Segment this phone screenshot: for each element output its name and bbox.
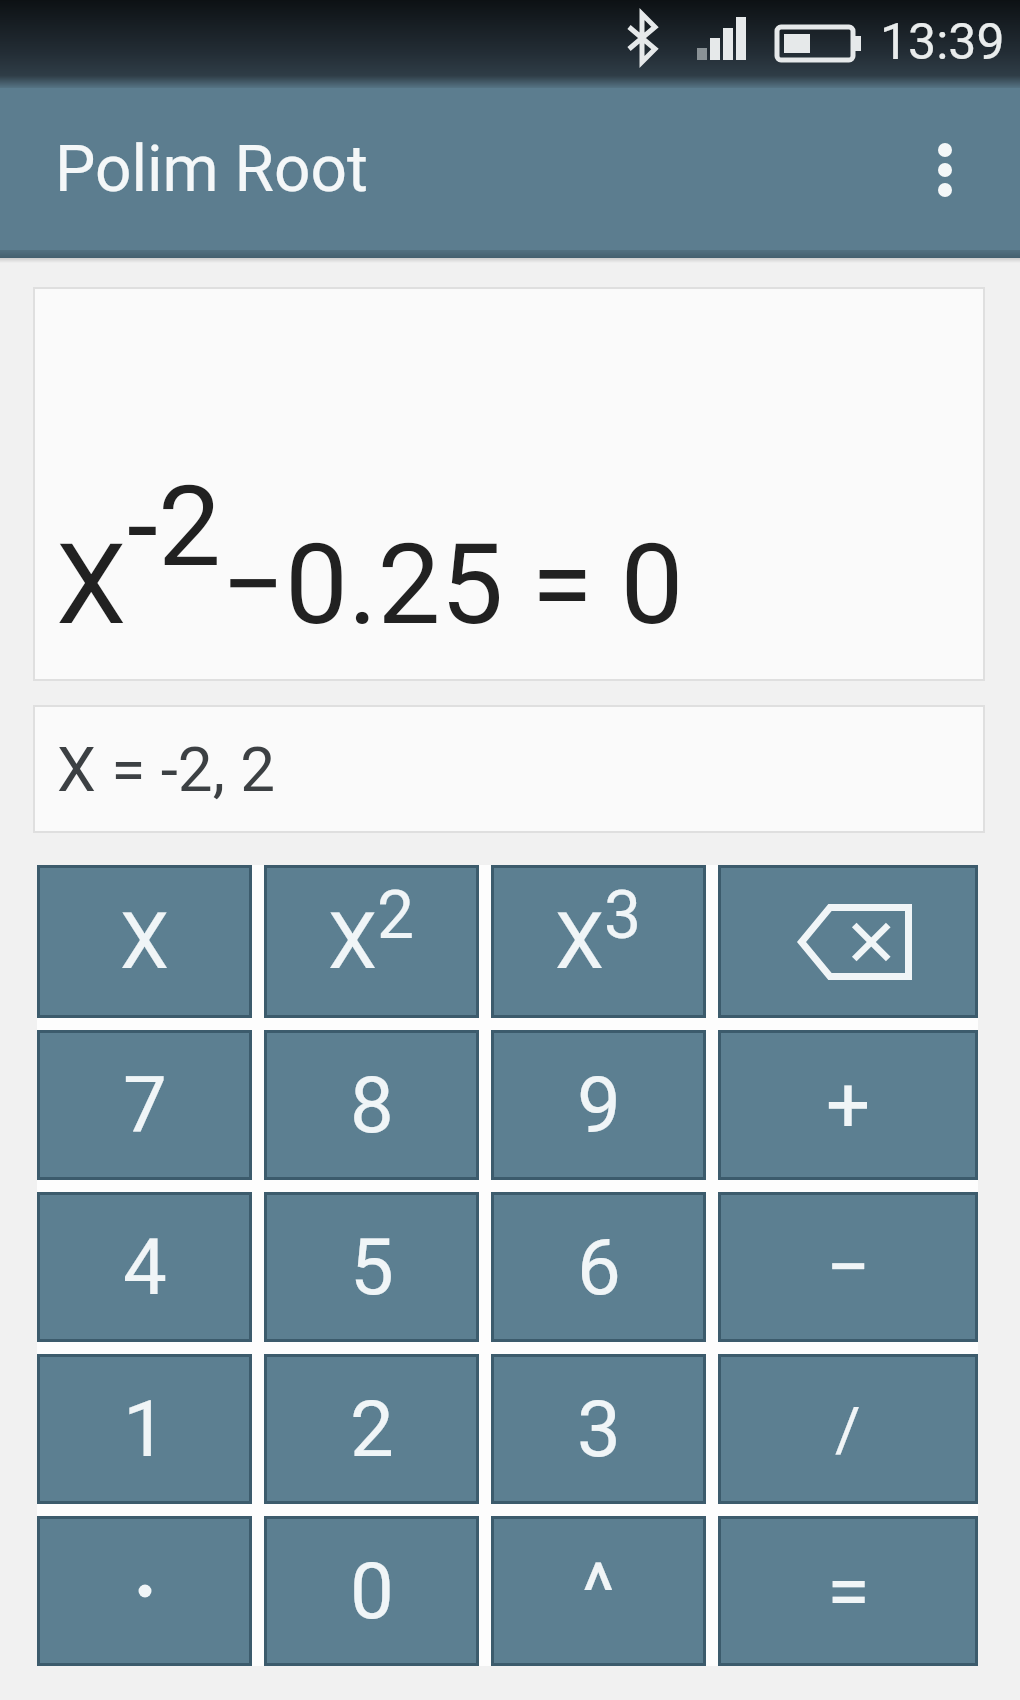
button[interactable]: 5 [264,1192,479,1342]
staticText: Polim Root [55,132,368,207]
staticText: 4 [123,1222,167,1313]
button[interactable]: 1 [37,1354,252,1504]
staticText: X = -2, 2 [57,733,276,806]
staticText: 6 [577,1222,621,1313]
button[interactable]: 6 [491,1192,706,1342]
staticText: 2 [377,877,415,954]
button[interactable]: 4 [37,1192,252,1342]
staticText: −0.25 = 0 [221,519,684,650]
staticText: -2 [127,461,221,592]
button[interactable]: 7 [37,1030,252,1180]
button[interactable] [900,88,1020,250]
staticText: 3 [604,877,642,954]
staticText: − [826,1222,871,1313]
staticText: ^ [582,1546,615,1637]
staticText: + [826,1060,871,1151]
button[interactable]: / [718,1354,978,1504]
staticText: X [56,519,127,650]
button[interactable]: X [264,865,479,1018]
staticText: 9 [577,1060,621,1151]
button[interactable]: X [37,865,252,1018]
button[interactable]: ^ [491,1516,706,1666]
button[interactable]: + [718,1030,978,1180]
staticText: X [120,896,169,987]
button[interactable]: X [491,865,706,1018]
button[interactable]: 2 [264,1354,479,1504]
staticText: 3 [577,1384,621,1475]
staticText: 7 [123,1060,167,1151]
button[interactable] [718,865,978,1018]
staticText: 1 [123,1384,167,1475]
staticText: / [835,1393,861,1466]
staticText: 2 [350,1384,394,1475]
button[interactable]: 3 [491,1354,706,1504]
button[interactable]: 0 [264,1516,479,1666]
staticText: X [328,896,377,987]
button[interactable]: − [718,1192,978,1342]
staticText: 5 [350,1222,394,1313]
button[interactable]: = [718,1516,978,1666]
button[interactable] [37,1516,252,1666]
button[interactable]: 8 [264,1030,479,1180]
staticText: 13:39 [880,13,1005,72]
staticText: = [827,1546,870,1637]
button[interactable]: 9 [491,1030,706,1180]
staticText: 0 [350,1546,394,1637]
staticText: X [555,896,604,987]
staticText: 8 [350,1060,394,1151]
